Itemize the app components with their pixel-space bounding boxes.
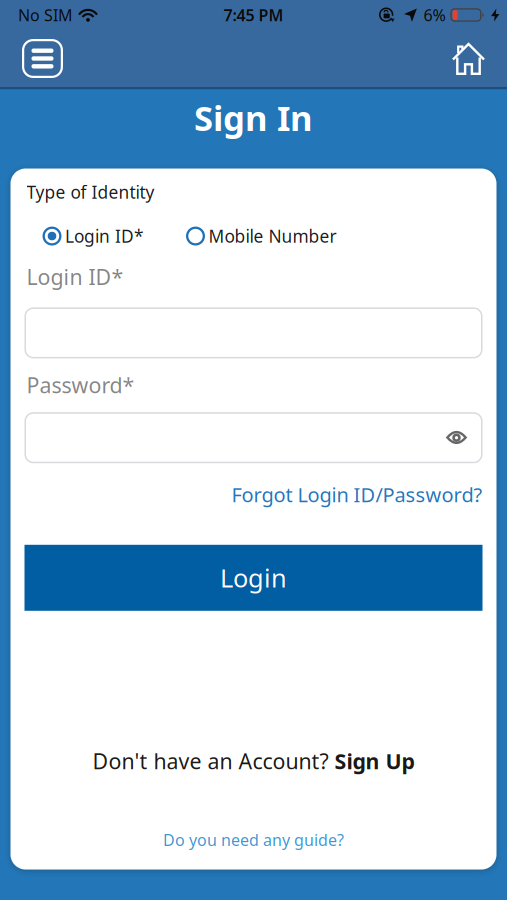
staticText: Forgot Login ID/Password? — [231, 481, 482, 508]
staticText: Type of Identity — [26, 180, 154, 203]
staticText: Password* — [26, 371, 134, 399]
button[interactable]: Don't have an Account? Sign Up — [92, 747, 414, 775]
staticText: Login ID* — [26, 263, 123, 291]
button[interactable]: Show password — [446, 432, 466, 444]
button[interactable]: Password — [24, 412, 482, 463]
button[interactable]: Login — [24, 545, 482, 611]
button[interactable]: Home — [452, 42, 485, 75]
button[interactable]: Forgot Login ID/Password? — [231, 481, 482, 508]
button[interactable]: Login ID* — [42, 225, 144, 248]
staticText: Login ID* — [65, 225, 144, 248]
staticText: No SIM — [18, 4, 73, 26]
staticText: Don't have an Account? Sign Up — [92, 747, 414, 775]
button[interactable]: Mobile Number — [186, 225, 336, 248]
button[interactable]: Do you need any guide? — [163, 829, 344, 850]
button[interactable]: Menu — [22, 39, 63, 78]
button[interactable]: Login ID — [24, 307, 482, 358]
staticText: Mobile Number — [208, 225, 336, 248]
staticText: 7:45 PM — [223, 4, 283, 26]
staticText: 6% — [423, 4, 445, 26]
staticText: Sign In — [194, 94, 313, 140]
staticText: Login — [220, 561, 287, 595]
staticText: Do you need any guide? — [163, 829, 344, 850]
